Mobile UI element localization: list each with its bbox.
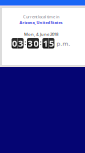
- staticText: 3: [27, 37, 32, 49]
- staticText: 5: [49, 37, 54, 49]
- button[interactable]: Arizona, United States: [19, 20, 62, 25]
- staticText: Arizona, United States: [19, 20, 62, 25]
- staticText: p.m.: [54, 39, 70, 47]
- staticText: 3: [18, 37, 23, 49]
- staticText: 0: [12, 37, 17, 49]
- staticText: Mon, 4. June 2018: [24, 31, 58, 37]
- staticText: 0: [33, 37, 38, 49]
- staticText: Current local time in: [23, 14, 59, 19]
- staticText: 1: [43, 37, 48, 49]
